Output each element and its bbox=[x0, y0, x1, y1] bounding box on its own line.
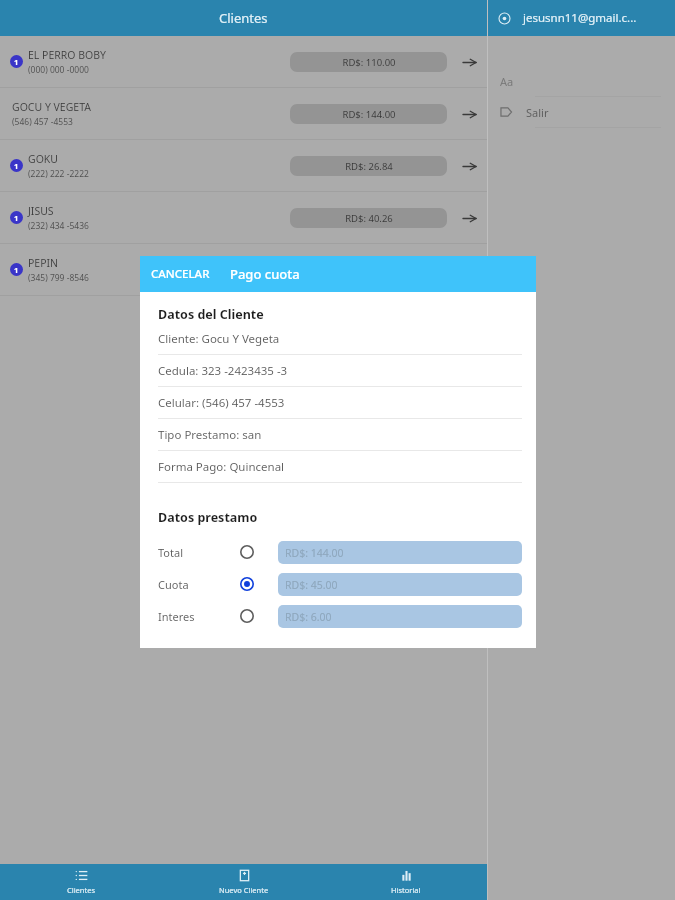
button[interactable]: Aa bbox=[488, 66, 675, 96]
staticText: RD$: 40.26 bbox=[345, 212, 393, 225]
button[interactable]: GOCU Y VEGETA bbox=[0, 88, 487, 140]
staticText: Tipo Prestamo: san bbox=[158, 427, 262, 443]
staticText: Nuevo Cliente bbox=[219, 885, 269, 895]
button[interactable]: Nuevo Cliente bbox=[163, 864, 325, 900]
button[interactable]: Cliente: Gocu Y Vegeta bbox=[158, 323, 522, 355]
button[interactable]: Salir bbox=[488, 97, 675, 127]
button[interactable]: 1 bbox=[0, 36, 487, 88]
staticText: Celular: (546) 457 -4553 bbox=[158, 395, 285, 411]
staticText: CANCELAR bbox=[151, 266, 210, 282]
staticText: (232) 434 -5436 bbox=[28, 220, 89, 232]
staticText: jesusnn11@gmail.c... bbox=[523, 10, 637, 26]
button[interactable]: Ver detalle bbox=[458, 51, 480, 73]
button[interactable]: Tipo Prestamo: san bbox=[158, 419, 522, 451]
staticText: EL PERRO BOBY bbox=[28, 48, 107, 62]
staticText: (345) 799 -8546 bbox=[28, 272, 89, 284]
staticText: RD$: 144.00 bbox=[342, 108, 396, 121]
button[interactable]: RD$: 40.26 bbox=[290, 208, 447, 228]
staticText: Datos del Cliente bbox=[158, 306, 264, 323]
staticText: GOCU Y VEGETA bbox=[12, 100, 91, 114]
button[interactable]: 1 bbox=[0, 140, 487, 192]
staticText: (222) 222 -2222 bbox=[28, 168, 89, 180]
staticText: 1 bbox=[14, 57, 19, 67]
staticText: 1 bbox=[14, 213, 19, 223]
staticText: Datos prestamo bbox=[158, 509, 258, 526]
button[interactable]: Ver detalle bbox=[458, 155, 480, 177]
button[interactable]: CANCELAR bbox=[140, 260, 221, 288]
button[interactable]: RD$: 26.84 bbox=[290, 156, 447, 176]
button[interactable]: Ver detalle bbox=[458, 207, 480, 229]
staticText: Cliente: Gocu Y Vegeta bbox=[158, 331, 280, 347]
staticText: RD$: 144.00 bbox=[285, 546, 344, 560]
staticText: Forma Pago: Quincenal bbox=[158, 459, 285, 475]
staticText: Aa bbox=[500, 74, 514, 89]
staticText: Clientes bbox=[67, 885, 96, 895]
staticText: RD$: 26.84 bbox=[345, 160, 393, 173]
button[interactable]: Ver detalle bbox=[458, 103, 480, 125]
staticText: RD$: 45.00 bbox=[285, 578, 338, 592]
button[interactable]: Celular: (546) 457 -4553 bbox=[158, 387, 522, 419]
button[interactable]: RD$: 110.00 bbox=[290, 52, 447, 72]
button[interactable]: jesusnn11@gmail.c... bbox=[488, 0, 675, 36]
button[interactable]: Cuota bbox=[158, 568, 522, 600]
button[interactable]: Forma Pago: Quincenal bbox=[158, 451, 522, 483]
staticText: 1 bbox=[14, 161, 19, 171]
button[interactable]: Cedula: 323 -2423435 -3 bbox=[158, 355, 522, 387]
button[interactable]: 1 bbox=[0, 192, 487, 244]
button[interactable]: Interes bbox=[158, 600, 522, 632]
staticText: PEPIN bbox=[28, 256, 59, 270]
staticText: Cuota bbox=[158, 577, 189, 592]
staticText: (000) 000 -0000 bbox=[28, 64, 89, 76]
button[interactable]: Total bbox=[158, 536, 522, 568]
staticText: GOKU bbox=[28, 152, 59, 166]
staticText: Pago cuota bbox=[230, 265, 300, 283]
button[interactable]: Clientes bbox=[0, 864, 163, 900]
staticText: (546) 457 -4553 bbox=[12, 116, 73, 128]
staticText: Total bbox=[158, 545, 183, 560]
staticText: RD$: 110.00 bbox=[342, 56, 396, 69]
staticText: Clientes bbox=[219, 9, 268, 27]
staticText: 1 bbox=[14, 265, 19, 275]
staticText: RD$: 6.00 bbox=[285, 610, 332, 624]
button[interactable]: Historial bbox=[325, 864, 487, 900]
staticText: Cedula: 323 -2423435 -3 bbox=[158, 363, 288, 379]
staticText: Salir bbox=[526, 105, 549, 120]
button[interactable]: RD$: 144.00 bbox=[290, 104, 447, 124]
staticText: JISUS bbox=[28, 204, 54, 218]
staticText: Historial bbox=[391, 885, 421, 895]
button[interactable]: 1 bbox=[0, 244, 487, 296]
staticText: Interes bbox=[158, 609, 195, 624]
